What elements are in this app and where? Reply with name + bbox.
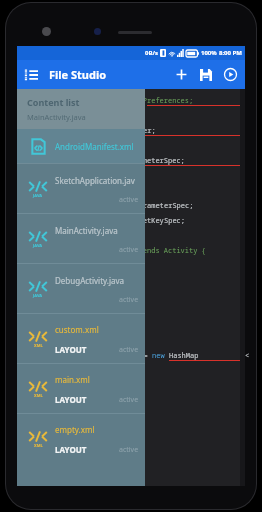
button[interactable]: Run bbox=[218, 63, 245, 86]
staticText: HashMap bbox=[169, 351, 199, 361]
button[interactable]: Open navigation drawer bbox=[17, 63, 45, 87]
staticText: references; bbox=[147, 96, 194, 106]
staticText: LAYOUT bbox=[55, 344, 87, 355]
staticText: DebugActivity.java bbox=[55, 275, 125, 286]
staticText: active bbox=[119, 195, 139, 205]
staticText: Spec; bbox=[164, 216, 185, 226]
staticText: active bbox=[119, 445, 139, 455]
staticText: SketchApplication.java bbox=[55, 175, 139, 186]
staticText: XML bbox=[34, 393, 43, 398]
staticText: MainActivity.java bbox=[27, 112, 86, 122]
staticText: 8:00 PM bbox=[219, 49, 242, 57]
staticText: ctivity { bbox=[168, 246, 206, 256]
button[interactable]: XML bbox=[17, 314, 145, 363]
button[interactable]: XML bbox=[17, 364, 145, 413]
staticText: boolean availab bbox=[21, 426, 93, 436]
staticText: import javax.crypto.spec. bbox=[21, 156, 126, 166]
staticText: AndroidManifest.xml bbox=[55, 141, 134, 152]
staticText: File Studio bbox=[49, 67, 107, 82]
staticText: private static int counter bbox=[21, 276, 139, 286]
staticText: empty.xml bbox=[55, 424, 95, 435]
staticText: active bbox=[119, 295, 139, 305]
staticText: LAYOUT bbox=[55, 444, 87, 455]
staticText: Manager; bbox=[122, 126, 156, 136]
staticText: import android.content.SharedP bbox=[21, 96, 147, 106]
staticText: Content list bbox=[27, 96, 80, 108]
staticText: import java.security.Key bbox=[21, 126, 122, 136]
staticText: new bbox=[152, 351, 169, 361]
button[interactable]: AndroidManifest.xml bbox=[17, 129, 145, 163]
staticText: import javax.crypto.spec.IvParamet bbox=[21, 201, 164, 211]
staticText: main.xml bbox=[55, 374, 90, 385]
staticText: active bbox=[119, 345, 139, 355]
staticText: erSpec; bbox=[164, 201, 194, 211]
staticText: ParameterSpec; bbox=[126, 156, 185, 166]
button[interactable]: Add bbox=[169, 63, 194, 86]
button[interactable]: JAVA bbox=[17, 264, 145, 313]
staticText: active bbox=[119, 395, 139, 405]
staticText: public class MainActivity extends A bbox=[21, 246, 168, 256]
staticText: JAVA bbox=[33, 293, 43, 298]
staticText: HashMap<String,String> m bbox=[21, 351, 131, 361]
staticText: 0B/s bbox=[145, 49, 158, 57]
staticText: ap = bbox=[131, 351, 152, 361]
staticText: import javax.crypto.spec.SecretKey bbox=[21, 216, 164, 226]
button[interactable]: XML bbox=[17, 414, 145, 463]
staticText: JAVA bbox=[33, 193, 43, 198]
staticText: JAVA bbox=[33, 243, 43, 248]
staticText: XML bbox=[34, 343, 43, 348]
button[interactable]: JAVA bbox=[17, 214, 145, 263]
button[interactable]: JAVA bbox=[17, 164, 145, 213]
staticText: active bbox=[119, 245, 139, 255]
button[interactable]: Save bbox=[194, 64, 218, 86]
staticText: MainActivity.java bbox=[55, 225, 118, 236]
staticText: 100% bbox=[201, 49, 217, 57]
staticText: LAYOUT bbox=[55, 394, 87, 405]
staticText: XML bbox=[34, 443, 43, 448]
staticText: custom.xml bbox=[55, 324, 99, 335]
staticText: le = bbox=[93, 426, 114, 436]
